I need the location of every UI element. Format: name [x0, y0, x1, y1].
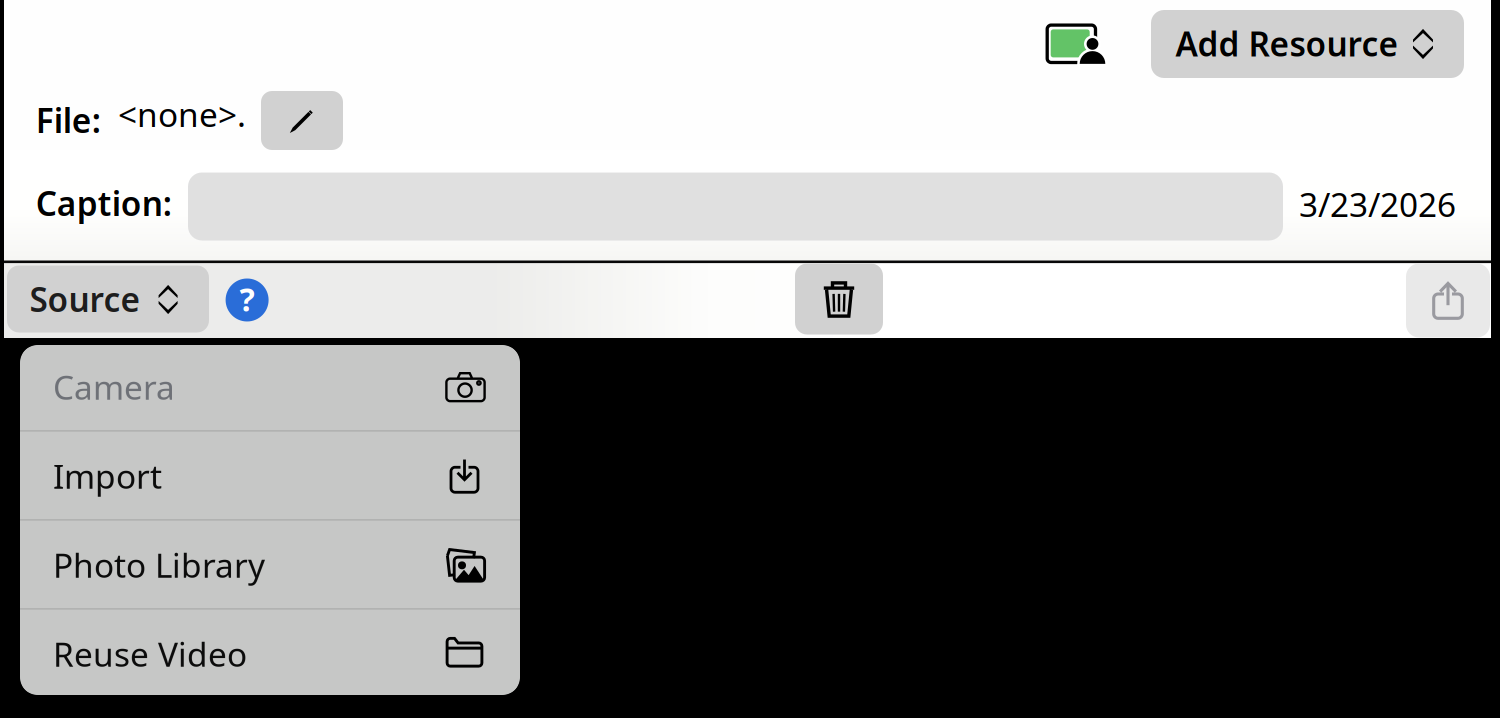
button[interactable]: Presenter: [1043, 21, 1107, 65]
staticText: <none>.: [118, 92, 246, 136]
staticText: Camera: [53, 365, 175, 409]
staticText: Photo Library: [53, 543, 265, 587]
button[interactable]: Reuse Video: [20, 610, 520, 697]
staticText: Reuse Video: [53, 632, 247, 676]
button[interactable]: Camera: [20, 343, 520, 430]
button[interactable]: Delete: [795, 263, 883, 334]
staticText: Add Resource: [1175, 21, 1398, 66]
staticText: Caption:: [36, 181, 172, 225]
button[interactable]: Help: [226, 278, 269, 321]
staticText: Import: [53, 454, 162, 498]
button[interactable]: Photo Library: [20, 521, 520, 608]
staticText: ?: [240, 278, 255, 320]
button[interactable]: Share: [1406, 263, 1490, 337]
staticText: 3/23/2026: [1299, 182, 1456, 226]
button[interactable]: Edit file name: [261, 91, 343, 150]
staticText: Source: [29, 277, 140, 321]
button[interactable]: Add Resource: [1151, 10, 1464, 78]
staticText: File:: [36, 98, 101, 142]
button[interactable]: Source: [7, 265, 209, 332]
button[interactable]: Import: [20, 432, 520, 519]
